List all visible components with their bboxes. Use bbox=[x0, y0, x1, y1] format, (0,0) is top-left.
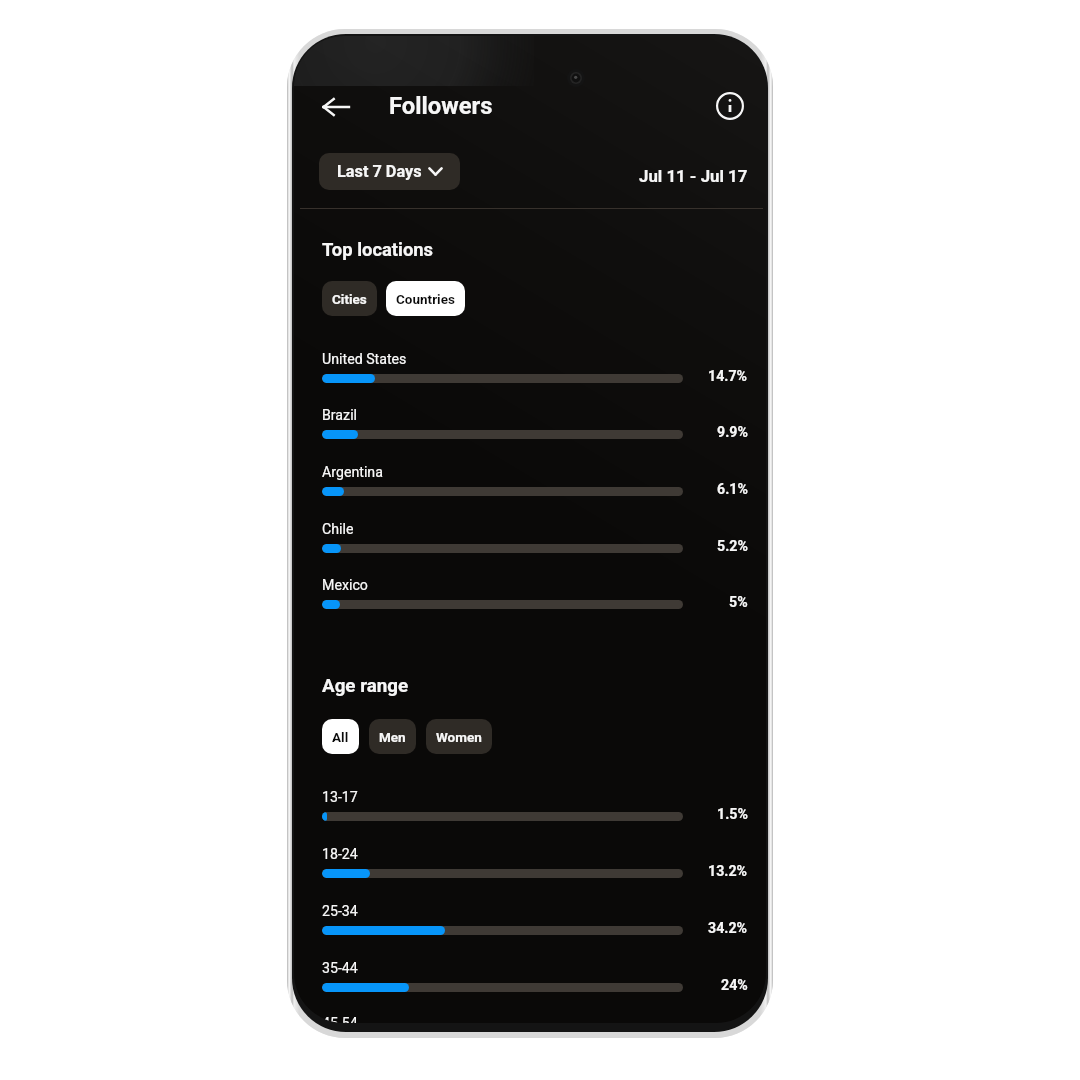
staticText: 14.7% bbox=[708, 368, 748, 385]
staticText: 25-34 bbox=[322, 903, 358, 920]
staticText: 9.9% bbox=[717, 424, 748, 441]
staticText: Women bbox=[436, 729, 482, 745]
staticText: 5.2% bbox=[717, 538, 748, 555]
staticText: 24% bbox=[721, 977, 748, 994]
staticText: Age range bbox=[322, 675, 409, 697]
staticText: Mexico bbox=[322, 577, 368, 594]
staticText: Followers bbox=[389, 92, 493, 120]
staticText: 35-44 bbox=[322, 960, 358, 977]
staticText: Chile bbox=[322, 521, 354, 538]
staticText: Cities bbox=[332, 291, 367, 307]
button[interactable]: Cities bbox=[322, 281, 377, 316]
staticText: Countries bbox=[396, 291, 455, 307]
staticText: 13-17 bbox=[322, 789, 358, 806]
button[interactable]: Information bbox=[714, 90, 746, 122]
button[interactable]: Men bbox=[369, 719, 416, 754]
staticText: 18-24 bbox=[322, 846, 358, 863]
staticText: Men bbox=[379, 729, 406, 745]
staticText: All bbox=[332, 729, 349, 745]
staticText: 45-54 bbox=[322, 1015, 358, 1023]
button[interactable]: Last 7 Days bbox=[319, 153, 460, 190]
staticText: Brazil bbox=[322, 407, 358, 424]
button[interactable]: Countries bbox=[386, 281, 465, 316]
staticText: Argentina bbox=[322, 464, 383, 481]
staticText: Jul 11 - Jul 17 bbox=[639, 166, 748, 186]
staticText: 5% bbox=[729, 594, 748, 611]
staticText: 13.2% bbox=[708, 863, 748, 880]
button[interactable]: All bbox=[322, 719, 359, 754]
staticText: 1.5% bbox=[717, 806, 748, 823]
staticText: 34.2% bbox=[708, 920, 748, 937]
button[interactable]: Women bbox=[426, 719, 492, 754]
staticText: United States bbox=[322, 351, 407, 368]
staticText: 6.1% bbox=[717, 481, 748, 498]
staticText: Top locations bbox=[322, 239, 434, 261]
button[interactable]: Back bbox=[322, 94, 350, 120]
staticText: Last 7 Days bbox=[337, 162, 422, 181]
